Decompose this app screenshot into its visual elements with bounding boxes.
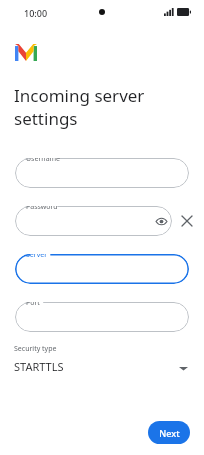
staticText: Username [26, 158, 61, 164]
staticText: Incoming server settings [14, 84, 145, 130]
staticText: Password [26, 206, 58, 212]
button[interactable]: Port [15, 302, 189, 332]
staticText: Server [26, 254, 48, 260]
button[interactable]: Show password [150, 210, 172, 232]
staticText: STARTTLS [14, 359, 64, 374]
staticText: 10:00 [24, 7, 48, 19]
button[interactable]: Next [148, 421, 190, 444]
staticText: Next [159, 427, 180, 439]
button[interactable]: Security type [14, 344, 190, 384]
button[interactable]: Clear password [176, 210, 198, 232]
button[interactable]: Username [15, 158, 189, 188]
button[interactable]: Password [15, 206, 172, 236]
button[interactable]: Server [15, 254, 189, 284]
staticText: Port [26, 302, 40, 308]
staticText: Security type [14, 344, 57, 354]
